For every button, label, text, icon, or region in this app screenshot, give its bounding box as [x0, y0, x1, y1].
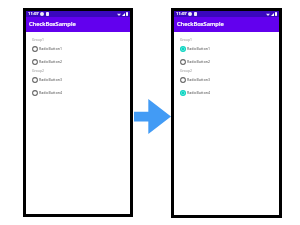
staticText: RadioButton2	[39, 59, 62, 64]
button[interactable]: RadioButton1	[26, 42, 130, 55]
other: Battery	[126, 12, 128, 16]
staticText: CheckBoxSample	[29, 20, 76, 28]
button[interactable]: RadioButton3	[174, 73, 279, 86]
button[interactable]: RadioButton2	[174, 55, 279, 68]
staticText: RadioButton1	[39, 46, 62, 51]
other: Mobile signal	[271, 13, 274, 16]
button[interactable]: RadioButton3	[26, 73, 130, 86]
staticText: 11:07	[176, 11, 187, 17]
staticText: RadioButton4	[187, 90, 210, 95]
staticText: Group1	[32, 37, 44, 42]
staticText: 11:07	[28, 11, 39, 17]
other: Notification	[188, 12, 192, 16]
other: Wi-Fi	[117, 13, 121, 16]
staticText: Group2	[32, 68, 44, 73]
button[interactable]: RadioButton4	[26, 86, 130, 99]
other: Battery	[275, 12, 277, 16]
other: Mobile signal	[122, 13, 125, 16]
staticText: Group1	[180, 37, 192, 42]
other: Notification	[46, 12, 49, 16]
other: Arrow pointing to the result screen	[134, 99, 171, 134]
staticText: RadioButton1	[187, 46, 210, 51]
staticText: RadioButton3	[39, 77, 62, 82]
button[interactable]: CheckBoxSample	[26, 17, 130, 32]
button[interactable]: RadioButton4	[174, 86, 279, 99]
other: Notification	[194, 12, 197, 16]
staticText: RadioButton2	[187, 59, 210, 64]
button[interactable]: CheckBoxSample	[174, 17, 279, 32]
button[interactable]: RadioButton1	[174, 42, 279, 55]
button[interactable]: RadioButton2	[26, 55, 130, 68]
staticText: RadioButton3	[187, 77, 210, 82]
staticText: Group2	[180, 68, 192, 73]
other: Wi-Fi	[266, 13, 270, 16]
staticText: RadioButton4	[39, 90, 62, 95]
staticText: CheckBoxSample	[177, 20, 224, 28]
other: Notification	[40, 12, 44, 16]
